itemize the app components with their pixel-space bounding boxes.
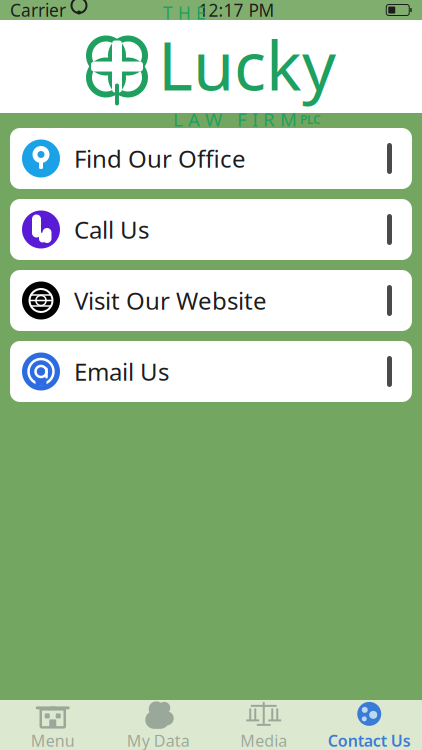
staticText: T H E xyxy=(163,1,206,24)
staticText: Contact Us xyxy=(328,730,411,750)
button[interactable]: Visit Our Website xyxy=(10,270,412,331)
staticText: Call Us xyxy=(74,214,149,245)
staticText: Lucky xyxy=(158,20,336,109)
staticText: Find Our Office xyxy=(74,143,246,174)
staticText: L A W F I R M xyxy=(173,107,297,132)
staticText: 12:17 PM xyxy=(198,0,274,21)
staticText: Menu xyxy=(31,730,75,750)
staticText: PLC xyxy=(300,111,321,127)
staticText: Carrier xyxy=(10,0,66,21)
staticText: Visit Our Website xyxy=(74,285,267,316)
button[interactable]: Email Us xyxy=(10,341,412,402)
button[interactable]: Call Us xyxy=(10,199,412,260)
button[interactable]: Contact Us xyxy=(316,700,422,750)
button[interactable]: My Data xyxy=(105,700,211,750)
staticText: Email Us xyxy=(74,356,169,387)
button[interactable]: Find Our Office xyxy=(10,128,412,189)
staticText: Media xyxy=(240,730,287,750)
button[interactable]: Menu xyxy=(0,700,105,750)
staticText: My Data xyxy=(127,730,190,750)
button[interactable]: Media xyxy=(211,700,316,750)
